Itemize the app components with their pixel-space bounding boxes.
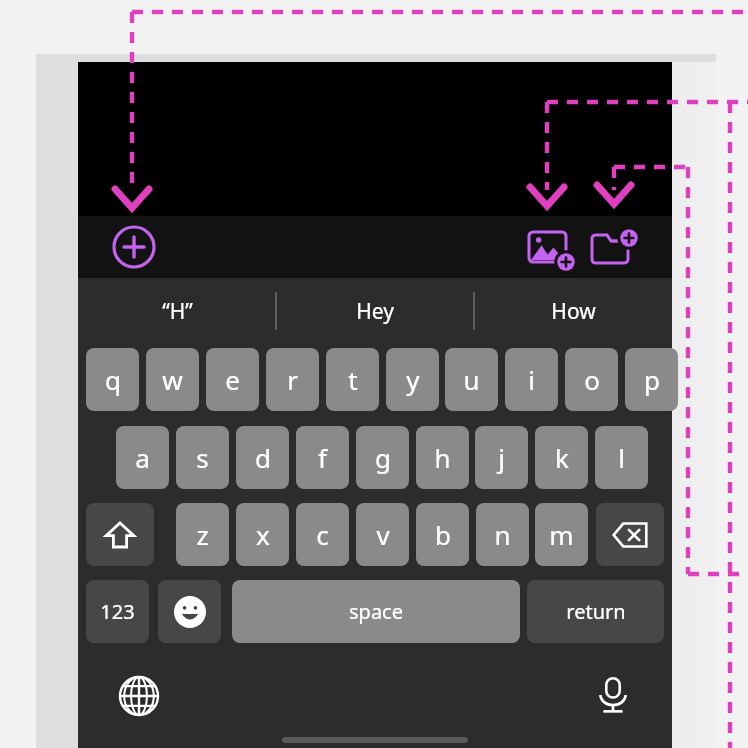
button[interactable]: a (116, 426, 169, 489)
button[interactable]: t (326, 348, 379, 411)
button[interactable]: d (236, 426, 289, 489)
staticText: y (406, 362, 420, 397)
staticText: u (463, 362, 480, 397)
staticText: w (162, 362, 183, 397)
staticText: n (494, 517, 511, 552)
staticText: Hey (356, 297, 394, 326)
button[interactable]: e (206, 348, 259, 411)
button[interactable]: g (356, 426, 409, 489)
button[interactable]: b (416, 503, 469, 566)
button[interactable]: h (416, 426, 469, 489)
staticText: q (105, 362, 121, 397)
button[interactable]: r (266, 348, 319, 411)
button[interactable]: Emoji (158, 580, 221, 643)
staticText: b (435, 517, 451, 552)
staticText: How (551, 297, 596, 326)
button[interactable]: p (625, 348, 678, 411)
button[interactable]: l (595, 426, 648, 489)
staticText: v (376, 517, 390, 552)
button[interactable]: “H” (78, 278, 276, 344)
button[interactable]: 123 (86, 580, 149, 643)
staticText: return (566, 598, 626, 625)
button[interactable]: y (386, 348, 439, 411)
staticText: z (196, 517, 209, 552)
button[interactable]: w (146, 348, 199, 411)
staticText: i (528, 362, 535, 397)
staticText: o (584, 362, 600, 397)
button[interactable]: n (476, 503, 529, 566)
staticText: t (348, 362, 358, 397)
button[interactable]: o (565, 348, 618, 411)
button[interactable]: i (505, 348, 558, 411)
staticText: c (316, 517, 329, 552)
button[interactable]: Add folder (589, 224, 639, 274)
staticText: “H” (162, 297, 193, 326)
button[interactable]: Shift (86, 503, 154, 566)
staticText: s (196, 440, 209, 475)
button[interactable]: u (445, 348, 498, 411)
button[interactable]: Hey (276, 278, 474, 344)
staticText: a (135, 440, 150, 475)
staticText: j (498, 440, 505, 475)
button[interactable]: q (86, 348, 139, 411)
staticText: f (318, 440, 327, 475)
button[interactable]: c (296, 503, 349, 566)
staticText: h (434, 440, 451, 475)
button[interactable]: Change keyboard (118, 675, 160, 717)
button[interactable]: How (474, 278, 672, 344)
staticText: g (375, 440, 391, 475)
button[interactable]: m (535, 503, 588, 566)
button[interactable]: Dictation (592, 674, 634, 716)
staticText: r (287, 362, 298, 397)
staticText: k (555, 440, 569, 475)
button[interactable]: Add image (526, 224, 576, 274)
button[interactable]: f (296, 426, 349, 489)
staticText: 123 (100, 598, 135, 625)
staticText: l (618, 440, 625, 475)
staticText: e (225, 362, 240, 397)
button[interactable]: Add (110, 223, 158, 271)
button[interactable]: j (475, 426, 528, 489)
button[interactable]: k (535, 426, 588, 489)
button[interactable]: x (236, 503, 289, 566)
button[interactable]: Backspace (596, 503, 664, 566)
button[interactable]: z (176, 503, 229, 566)
staticText: m (549, 517, 574, 552)
button[interactable]: v (356, 503, 409, 566)
staticText: d (255, 440, 271, 475)
staticText: p (644, 362, 660, 397)
button[interactable]: space (232, 580, 520, 643)
staticText: x (256, 517, 270, 552)
button[interactable]: return (527, 580, 664, 643)
button[interactable]: s (176, 426, 229, 489)
staticText: space (349, 598, 403, 625)
